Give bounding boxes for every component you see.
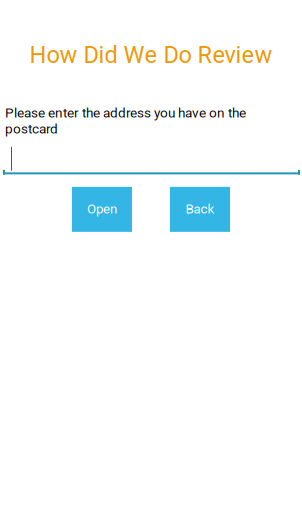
staticText: Please enter the address you have on the… xyxy=(5,105,246,137)
staticText: How Did We Do Review xyxy=(29,41,272,69)
button[interactable]: Open xyxy=(72,187,132,232)
button[interactable]: Address xyxy=(0,147,302,175)
staticText: Open xyxy=(87,201,117,217)
staticText: Back xyxy=(185,201,214,217)
button[interactable]: Back xyxy=(170,187,230,232)
